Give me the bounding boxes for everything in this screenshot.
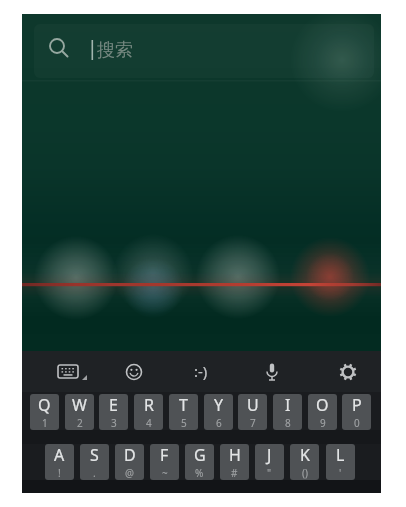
button[interactable]: Q	[30, 394, 59, 430]
button[interactable]: H	[220, 444, 249, 480]
staticText: Y	[214, 394, 224, 416]
staticText: 9	[320, 416, 326, 430]
staticText: "	[267, 466, 272, 480]
staticText: @	[125, 466, 134, 480]
button[interactable]: T	[169, 394, 198, 430]
button[interactable]: Y	[204, 394, 233, 430]
staticText: #	[231, 466, 238, 480]
button[interactable]: J	[255, 444, 284, 480]
staticText: H	[229, 444, 241, 466]
staticText: U	[247, 394, 259, 416]
staticText: ~	[162, 466, 168, 480]
staticText: 3	[111, 416, 117, 430]
staticText: Q	[38, 394, 51, 416]
button[interactable]: F	[150, 444, 179, 480]
button[interactable]: I	[273, 394, 302, 430]
staticText: 搜索	[97, 39, 133, 62]
staticText: 4	[146, 416, 152, 430]
staticText: 6	[216, 416, 222, 430]
staticText: '	[339, 466, 342, 480]
staticText: K	[300, 444, 310, 466]
button[interactable]	[34, 24, 374, 78]
button[interactable]: W	[65, 394, 94, 430]
button[interactable]: G	[185, 444, 214, 480]
button[interactable]	[46, 355, 90, 387]
button[interactable]: K	[290, 444, 319, 480]
staticText: S	[90, 444, 99, 466]
button[interactable]: :-)	[179, 355, 223, 387]
staticText: P	[352, 394, 362, 416]
staticText: 1	[42, 416, 48, 430]
staticText: E	[109, 394, 118, 416]
staticText: J	[267, 444, 272, 466]
button[interactable]: U	[238, 394, 267, 430]
staticText: I	[285, 394, 291, 416]
staticText: !	[58, 466, 61, 480]
staticText: D	[124, 444, 136, 466]
staticText: 2	[77, 416, 83, 430]
button[interactable]: E	[99, 394, 128, 430]
staticText: .	[93, 466, 96, 480]
staticText: :-)	[194, 361, 208, 381]
button[interactable]: A	[45, 444, 74, 480]
staticText: 0	[354, 416, 360, 430]
button[interactable]	[112, 355, 156, 387]
staticText: T	[179, 394, 188, 416]
staticText: 7	[250, 416, 256, 430]
staticText: R	[144, 394, 154, 416]
button[interactable]: O	[308, 394, 337, 430]
staticText: O	[316, 394, 329, 416]
button[interactable]	[250, 355, 294, 387]
staticText: 8	[285, 416, 291, 430]
button[interactable]: R	[134, 394, 163, 430]
button[interactable]: S	[80, 444, 109, 480]
staticText: ()	[302, 466, 308, 480]
button[interactable]: L	[326, 444, 355, 480]
staticText: 5	[181, 416, 187, 430]
staticText: F	[160, 444, 169, 466]
button[interactable]	[326, 355, 370, 387]
button[interactable]: P	[342, 394, 371, 430]
staticText: W	[72, 394, 87, 416]
staticText: L	[336, 444, 345, 466]
button[interactable]: D	[115, 444, 144, 480]
staticText: G	[194, 444, 206, 466]
staticText: A	[54, 444, 65, 466]
staticText: %	[195, 466, 204, 480]
